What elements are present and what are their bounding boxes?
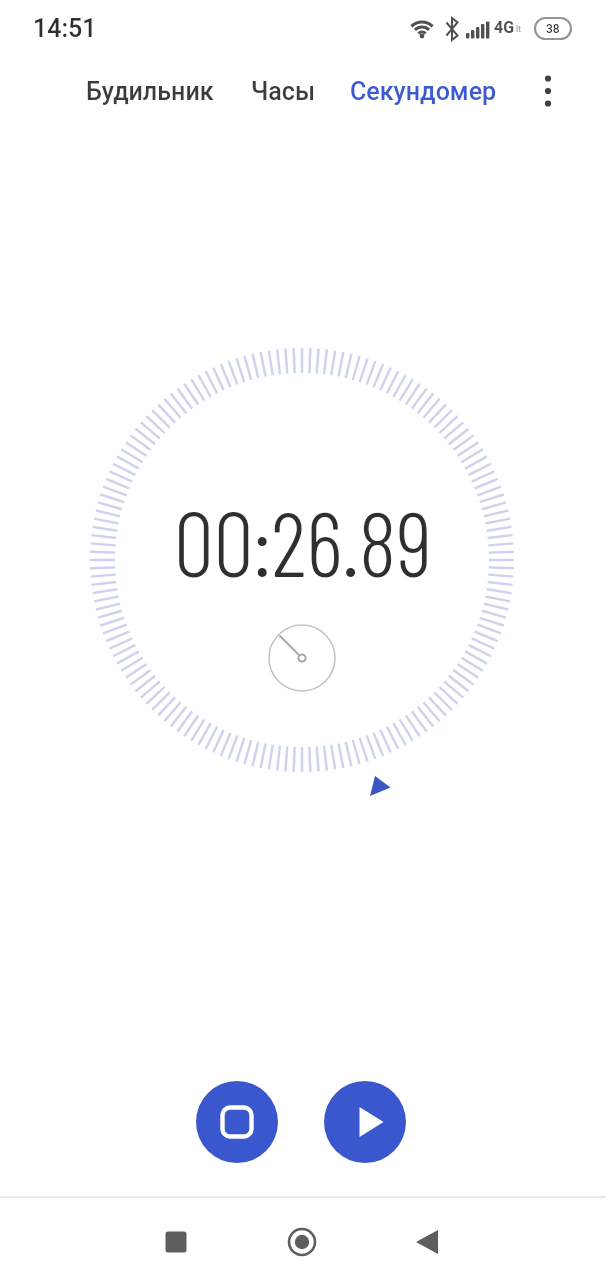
staticText: 38 bbox=[546, 22, 560, 36]
staticText: Секундомер bbox=[350, 77, 497, 106]
button[interactable]: Секундомер bbox=[343, 71, 503, 111]
button[interactable] bbox=[398, 1212, 458, 1272]
button[interactable]: 14:51 bbox=[33, 14, 97, 43]
staticText: 14:51 bbox=[33, 14, 97, 43]
button[interactable] bbox=[196, 1081, 278, 1163]
staticText: 4G bbox=[494, 18, 515, 37]
staticText: Будильник bbox=[86, 77, 214, 106]
button[interactable] bbox=[324, 1081, 406, 1163]
staticText: 00:26.89 bbox=[174, 487, 432, 587]
button[interactable] bbox=[528, 68, 570, 114]
staticText: Часы bbox=[251, 77, 316, 106]
button[interactable]: Будильник bbox=[73, 71, 226, 111]
button[interactable] bbox=[146, 1212, 206, 1272]
button[interactable]: Часы bbox=[228, 71, 338, 111]
staticText: lt bbox=[516, 24, 522, 35]
button[interactable] bbox=[272, 1212, 332, 1272]
